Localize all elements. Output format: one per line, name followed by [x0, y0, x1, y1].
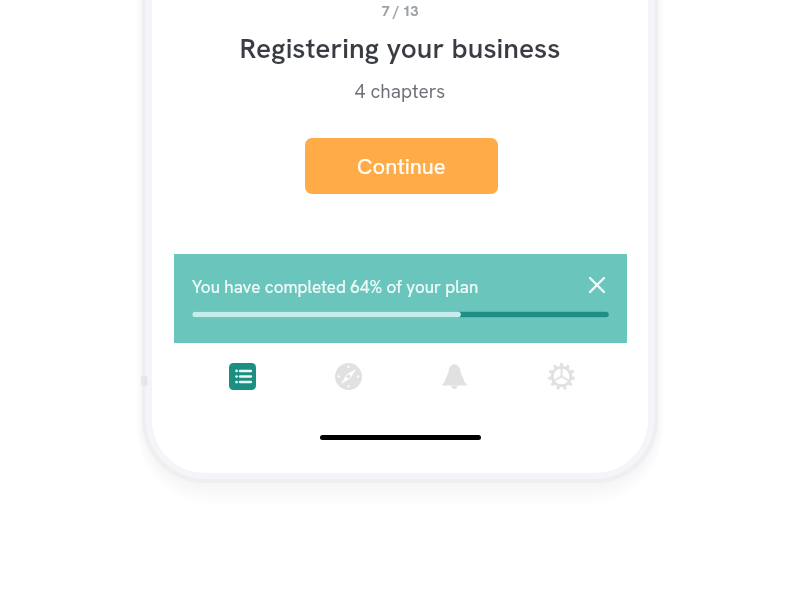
- button[interactable]: Notifications: [426, 348, 482, 404]
- staticText: 7 / 13: [152, 2, 648, 20]
- staticText: 4 chapters: [152, 79, 648, 104]
- button[interactable]: Continue: [305, 138, 498, 194]
- staticText: You have completed 64% of your plan: [192, 276, 479, 298]
- button[interactable]: Explore: [320, 348, 376, 404]
- staticText: Continue: [357, 152, 446, 181]
- staticText: Registering your business: [152, 30, 648, 66]
- button[interactable]: Lessons: [214, 348, 270, 404]
- button[interactable]: Settings: [533, 348, 589, 404]
- button[interactable]: Dismiss: [578, 266, 616, 304]
